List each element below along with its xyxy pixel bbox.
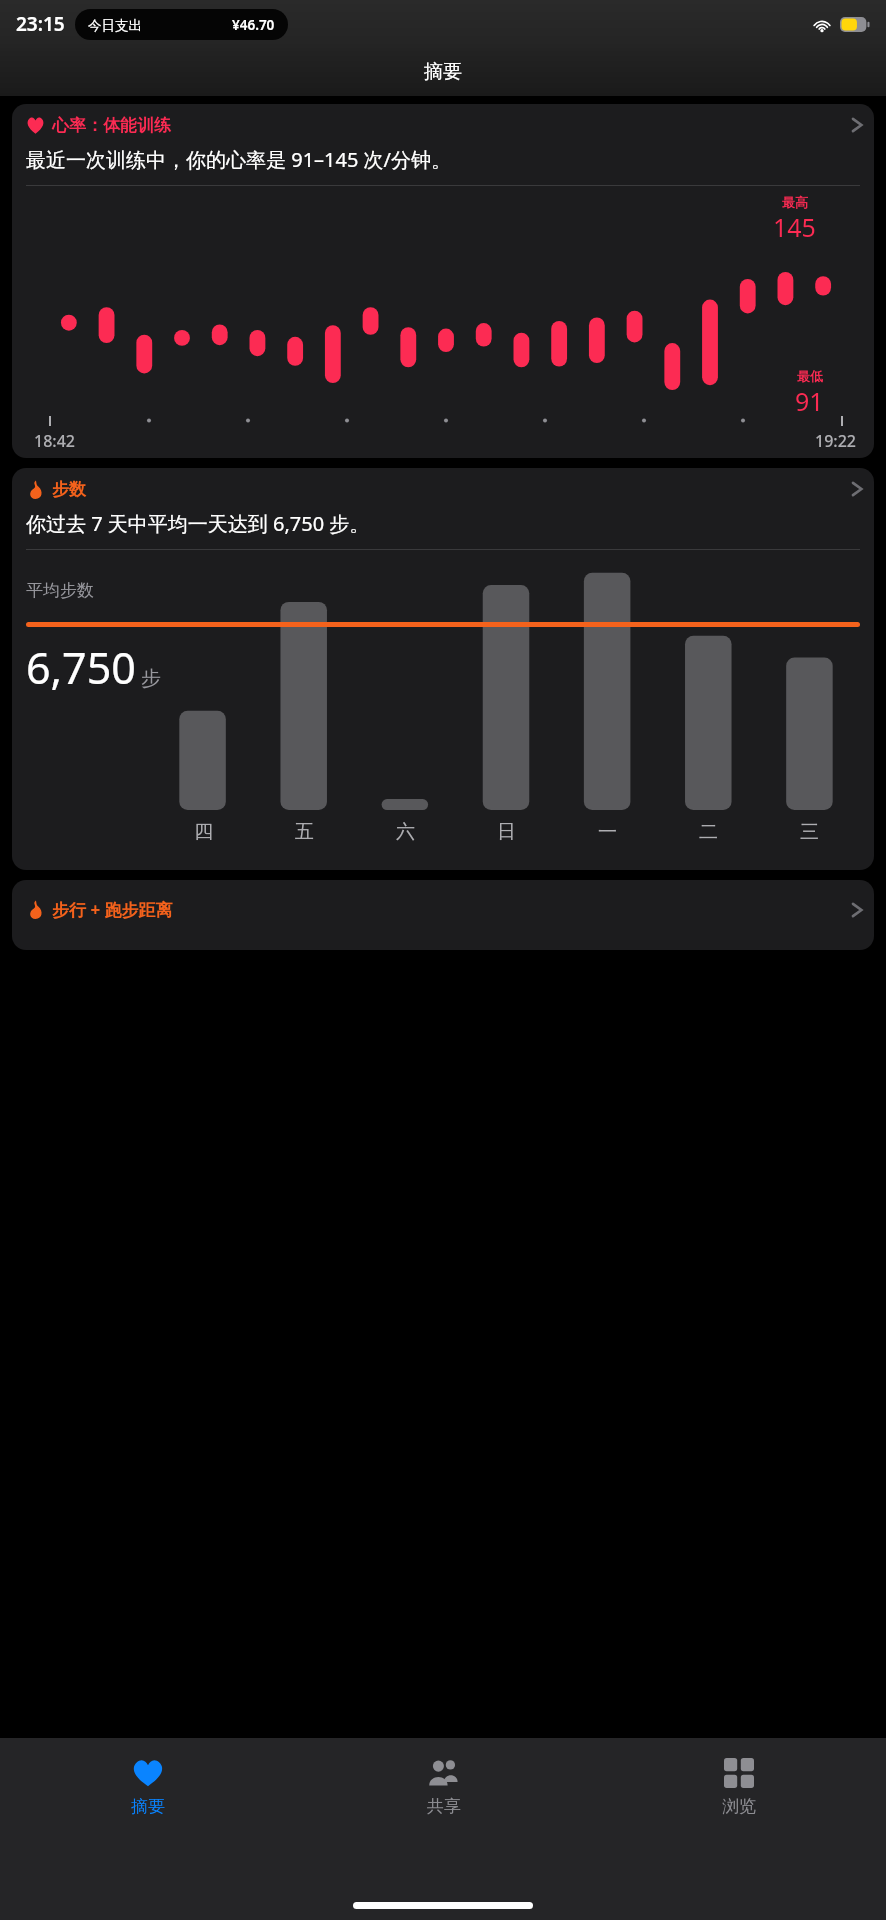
staticText: 平均步数 (26, 580, 94, 601)
button[interactable]: 步数 (12, 468, 874, 870)
staticText: 心率：体能训练 (52, 115, 171, 136)
button[interactable]: 今日支出 (75, 9, 288, 40)
staticText: 浏览 (722, 1796, 756, 1817)
button[interactable]: 步数 (12, 468, 874, 504)
staticText: 最高 (782, 194, 808, 210)
button[interactable]: 心率：体能训练 (12, 104, 874, 458)
button[interactable]: 心率：体能训练 (12, 104, 874, 140)
staticText: 一 (598, 820, 617, 844)
staticText: 19:22 (815, 430, 856, 452)
staticText: 步行 + 跑步距离 (52, 898, 173, 921)
staticText: ¥46.70 (232, 16, 275, 34)
button[interactable]: 摘要 (0, 1756, 296, 1856)
staticText: 你过去 7 天中平均一天达到 6,750 步。 (26, 510, 370, 537)
button[interactable]: 共享 (296, 1756, 591, 1856)
button[interactable]: 步行 + 跑步距离 (12, 880, 874, 950)
staticText: 四 (194, 820, 213, 844)
staticText: 步数 (52, 479, 86, 500)
staticText: 六 (396, 820, 415, 844)
staticText: 共享 (427, 1796, 461, 1817)
staticText: 23:15 (16, 11, 65, 37)
staticText: 91 (795, 384, 824, 418)
staticText: 今日支出 (88, 17, 142, 34)
staticText: 五 (295, 820, 314, 844)
staticText: 最低 (797, 368, 823, 384)
staticText: 18:42 (34, 430, 75, 452)
staticText: 最近一次训练中，你的心率是 91–145 次/分钟。 (26, 146, 452, 173)
staticText: 三 (800, 820, 819, 844)
staticText: 摘要 (424, 60, 462, 84)
staticText: 摘要 (131, 1796, 165, 1817)
staticText: 步 (141, 666, 161, 691)
staticText: 日 (497, 820, 516, 844)
staticText: 6,750 (26, 638, 136, 697)
staticText: 145 (773, 210, 816, 244)
staticText: 二 (699, 820, 718, 844)
button[interactable]: 浏览 (591, 1756, 886, 1856)
